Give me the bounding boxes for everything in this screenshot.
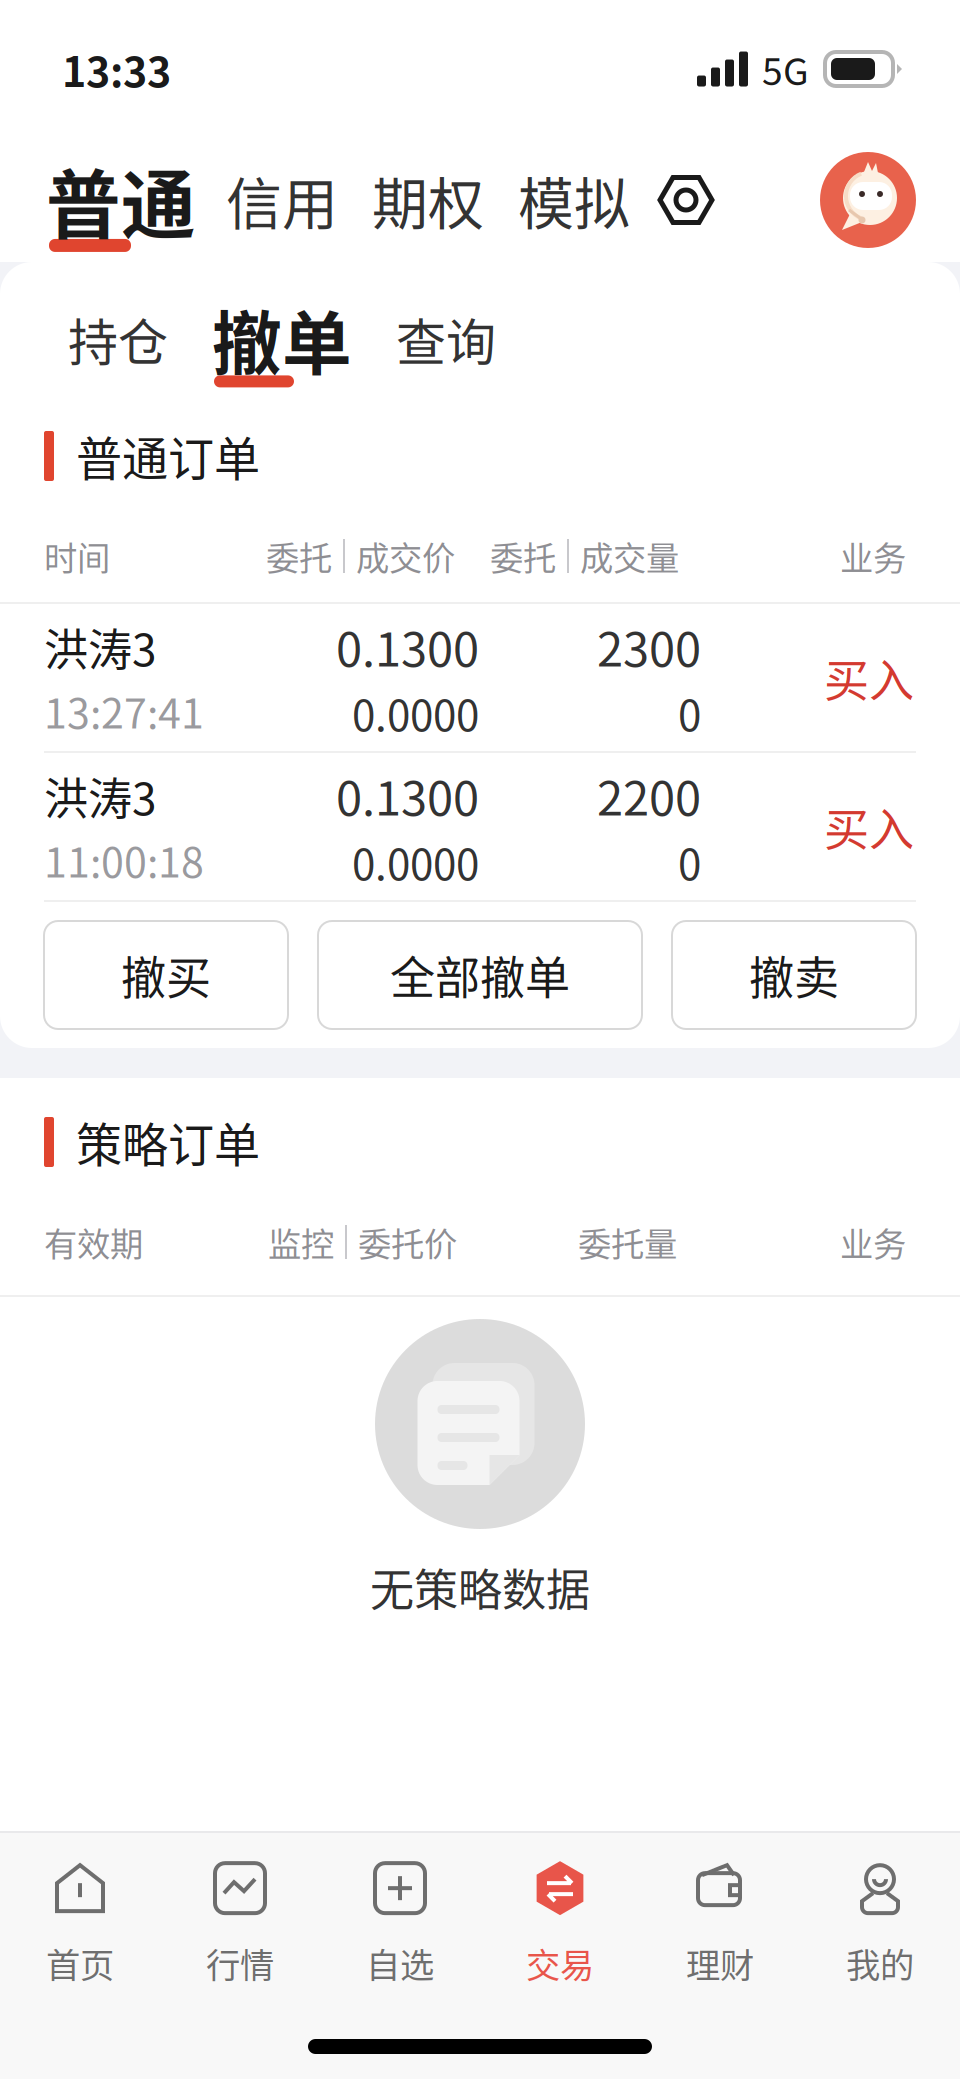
staticText: 策略订单 bbox=[76, 1109, 260, 1175]
staticText: 理财 bbox=[686, 1938, 754, 1988]
button[interactable]: 普通 bbox=[46, 146, 196, 254]
button[interactable]: 模拟 bbox=[484, 159, 630, 240]
button[interactable]: 持仓 bbox=[68, 303, 168, 375]
staticText: 13:27:41 bbox=[44, 681, 204, 740]
staticText: 撤单 bbox=[212, 289, 352, 389]
staticText: 0 bbox=[678, 682, 701, 743]
button[interactable]: 撤卖 bbox=[672, 921, 916, 1029]
staticText: 委托价 bbox=[358, 1218, 457, 1266]
staticText: 0.1300 bbox=[336, 761, 479, 829]
button[interactable]: 行情 bbox=[160, 1860, 320, 1988]
staticText: 洪涛3 bbox=[44, 615, 156, 679]
staticText: 信用 bbox=[226, 159, 338, 240]
staticText: 模拟 bbox=[518, 159, 630, 240]
button[interactable]: 信用 bbox=[196, 159, 338, 240]
staticText: 撤卖 bbox=[749, 942, 839, 1008]
staticText: 买入 bbox=[824, 794, 914, 859]
staticText: 0.0000 bbox=[352, 831, 479, 892]
button[interactable]: 全部撤单 bbox=[318, 921, 642, 1029]
staticText: 0 bbox=[678, 831, 701, 892]
button[interactable]: 理财 bbox=[640, 1860, 800, 1988]
staticText: 交易 bbox=[526, 1938, 594, 1988]
button[interactable]: 我的 bbox=[800, 1860, 960, 1988]
button[interactable]: 期权 bbox=[338, 159, 484, 240]
staticText: 洪涛3 bbox=[44, 764, 156, 828]
staticText: 2300 bbox=[597, 612, 701, 680]
staticText: 2200 bbox=[597, 761, 701, 829]
staticText: 普通订单 bbox=[76, 423, 260, 489]
button[interactable]: 洪涛3 bbox=[0, 604, 960, 751]
staticText: 买入 bbox=[824, 645, 914, 710]
staticText: 全部撤单 bbox=[390, 942, 570, 1008]
staticText: 期权 bbox=[372, 159, 484, 240]
staticText: 委托 bbox=[266, 532, 332, 580]
staticText: 我的 bbox=[846, 1938, 914, 1988]
staticText: 0.1300 bbox=[336, 612, 479, 680]
button[interactable]: 撤单 bbox=[168, 289, 352, 389]
staticText: 自选 bbox=[366, 1938, 434, 1988]
staticText: 普通 bbox=[46, 146, 196, 254]
staticText: 0.0000 bbox=[352, 682, 479, 743]
staticText: 行情 bbox=[206, 1938, 274, 1988]
staticText: 撤买 bbox=[121, 942, 211, 1008]
button[interactable]: 洪涛3 bbox=[0, 753, 960, 900]
staticText: 13:33 bbox=[62, 39, 171, 99]
staticText: 业务 bbox=[840, 532, 906, 580]
staticText: 成交量 bbox=[580, 532, 679, 580]
staticText: 无策略数据 bbox=[370, 1555, 590, 1619]
staticText: 成交价 bbox=[356, 532, 455, 580]
staticText: 业务 bbox=[840, 1218, 906, 1266]
staticText: 时间 bbox=[44, 532, 110, 580]
button[interactable]: 首页 bbox=[0, 1860, 160, 1988]
staticText: 有效期 bbox=[44, 1218, 143, 1266]
staticText: 首页 bbox=[46, 1938, 114, 1988]
staticText: 11:00:18 bbox=[44, 830, 204, 889]
button[interactable]: Settings bbox=[630, 172, 714, 228]
staticText: 监控 bbox=[268, 1218, 334, 1266]
button[interactable]: 查询 bbox=[352, 303, 496, 375]
staticText: 委托量 bbox=[578, 1218, 677, 1266]
staticText: 查询 bbox=[396, 303, 496, 375]
button[interactable]: 交易 bbox=[480, 1860, 640, 1988]
button[interactable]: 自选 bbox=[320, 1860, 480, 1988]
staticText: 5G bbox=[762, 42, 809, 96]
staticText: 委托 bbox=[490, 532, 556, 580]
staticText: 持仓 bbox=[68, 303, 168, 375]
button[interactable]: 撤买 bbox=[44, 921, 288, 1029]
button[interactable]: Customer service assistant bbox=[820, 152, 916, 248]
